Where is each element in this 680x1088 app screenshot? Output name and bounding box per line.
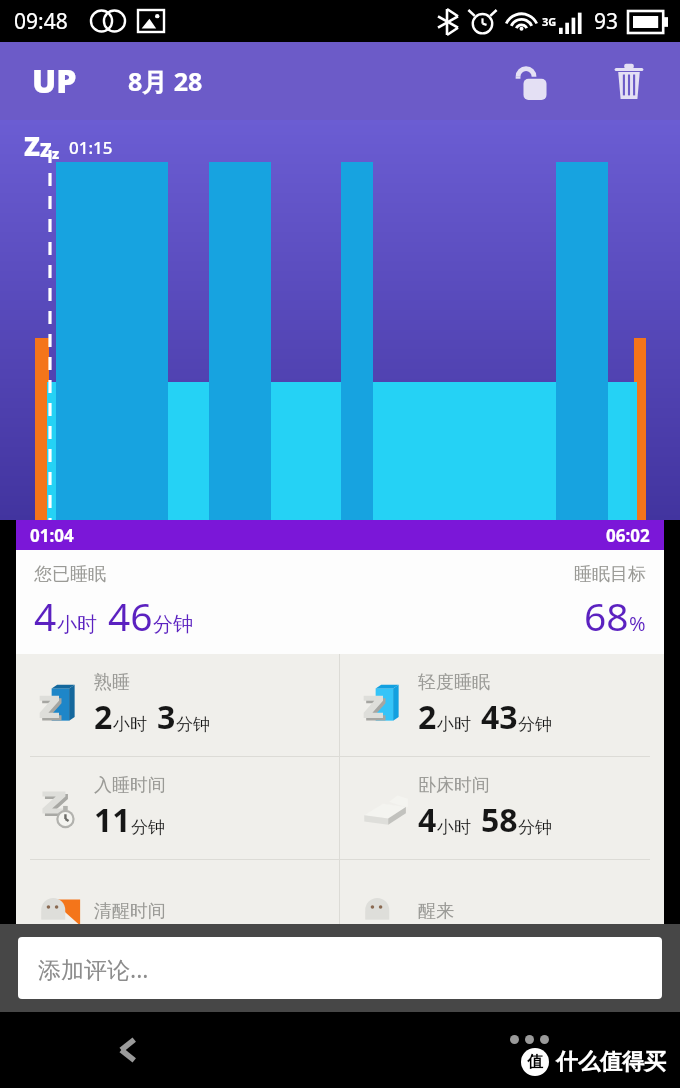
staticText: 11 [94,798,131,842]
button[interactable]: Back [98,1020,158,1080]
staticText: z [52,144,60,163]
staticText: 添加评论... [38,953,149,984]
button[interactable]: 添加评论... [18,937,662,999]
staticText: 熟睡 [94,671,130,694]
staticText: 2 [94,695,113,739]
staticText: 3 [157,695,176,739]
staticText: 小时 [113,714,147,735]
staticText: 轻度睡眠 [418,671,490,694]
staticText: 分钟 [518,714,552,735]
button[interactable]: 01:04 [16,520,664,550]
staticText: UP [32,59,77,103]
button[interactable]: 熟睡 [16,654,339,756]
staticText: 您已睡眠 [34,563,106,586]
button[interactable]: 入睡时间 [16,757,339,859]
staticText: 8月 28 [128,64,203,98]
staticText: 小时 [437,817,471,838]
staticText: 值 [527,1052,543,1072]
staticText: 06:02 [606,524,650,547]
staticText: 01:04 [30,524,74,547]
staticText: Z [40,137,52,163]
staticText: 09:48 [14,7,68,36]
staticText: 小时 [57,612,97,637]
staticText: 43 [481,695,518,739]
button[interactable]: Unlock [506,52,564,110]
staticText: 醒来 [418,900,454,923]
staticText: 3G [542,14,557,29]
staticText: % [629,610,646,637]
staticText: 68 [584,589,629,642]
staticText: 分钟 [131,817,165,838]
staticText: 46 [108,589,153,642]
staticText: 入睡时间 [94,774,166,797]
staticText: 93 [594,7,619,36]
staticText: 分钟 [153,612,193,637]
staticText: 清醒时间 [94,900,166,923]
button[interactable]: Delete [600,52,658,110]
staticText: 4 [418,798,437,842]
staticText: 分钟 [518,817,552,838]
button[interactable]: 轻度睡眠 [340,654,664,756]
staticText: Z [24,128,40,163]
button[interactable]: 醒来 [340,860,664,962]
staticText: 睡眠目标 [574,563,646,586]
staticText: 小时 [437,714,471,735]
staticText: 分钟 [176,714,210,735]
button[interactable]: 您已睡眠 [16,550,664,654]
button[interactable]: 清醒时间 [16,860,339,962]
staticText: 什么值得买 [556,1048,666,1076]
staticText: 2 [418,695,437,739]
button[interactable]: 卧床时间 [340,757,664,859]
staticText: 01:15 [69,136,113,159]
staticText: 58 [481,798,518,842]
staticText: 卧床时间 [418,774,490,797]
staticText: 4 [34,589,57,642]
